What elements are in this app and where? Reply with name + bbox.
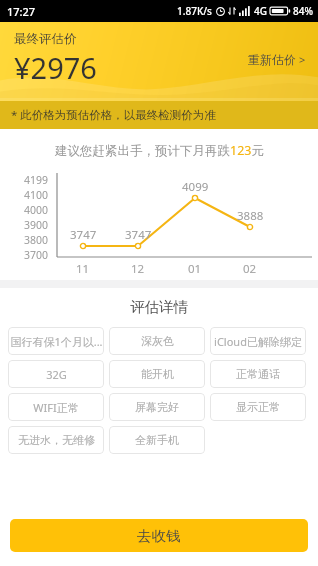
button[interactable]: 屏幕完好: [109, 393, 205, 421]
button[interactable]: 能开机: [109, 360, 205, 388]
staticText: 02: [243, 261, 257, 277]
button[interactable]: 去收钱: [10, 519, 308, 552]
staticText: 3900: [14, 218, 48, 232]
staticText: 4100: [14, 188, 48, 202]
staticText: 3747: [70, 227, 97, 243]
staticText: 01: [188, 261, 202, 277]
staticText: 3700: [14, 248, 48, 262]
staticText: >: [299, 52, 306, 67]
staticText: 国行有保1个月以...: [10, 334, 103, 349]
staticText: ¥2976: [14, 48, 97, 87]
button[interactable]: 全新手机: [109, 426, 205, 454]
staticText: iCloud已解除绑定: [214, 334, 302, 349]
staticText: 重新估价: [248, 52, 296, 67]
button[interactable]: 深灰色: [109, 327, 205, 355]
staticText: 建议您赶紧出手，预计下月再跌123元: [55, 142, 264, 159]
button[interactable]: WIFI正常: [8, 393, 104, 421]
button[interactable]: 重新估价: [240, 48, 314, 71]
button[interactable]: iCloud已解除绑定: [210, 327, 306, 355]
staticText: 4099: [182, 179, 209, 195]
staticText: 3747: [125, 227, 152, 243]
staticText: 显示正常: [236, 400, 280, 414]
staticText: 无进水，无维修: [18, 433, 95, 447]
staticText: 32G: [46, 367, 67, 382]
staticText: 12: [131, 261, 145, 277]
staticText: 3888: [237, 208, 264, 224]
button[interactable]: 国行有保1个月以...: [8, 327, 104, 355]
staticText: 11: [76, 261, 90, 277]
button[interactable]: 正常通话: [210, 360, 306, 388]
button[interactable]: 32G: [8, 360, 104, 388]
staticText: 4G: [254, 4, 267, 18]
staticText: 4000: [14, 203, 48, 217]
button[interactable]: 无进水，无维修: [8, 426, 104, 454]
staticText: 评估详情: [130, 298, 188, 316]
staticText: * 此价格为预估价格，以最终检测价为准: [11, 107, 216, 123]
staticText: 能开机: [141, 367, 174, 381]
staticText: 正常通话: [236, 367, 280, 381]
staticText: 去收钱: [137, 527, 181, 545]
staticText: 最终评估价: [14, 31, 77, 47]
staticText: WIFI正常: [33, 400, 79, 415]
staticText: 3800: [14, 233, 48, 247]
button[interactable]: 显示正常: [210, 393, 306, 421]
staticText: 全新手机: [135, 433, 179, 447]
staticText: 屏幕完好: [135, 400, 179, 414]
staticText: 17:27: [7, 4, 36, 19]
staticText: 4199: [14, 173, 48, 187]
staticText: 1.87K/s: [177, 4, 212, 18]
staticText: 深灰色: [141, 334, 174, 348]
staticText: 84%: [293, 4, 313, 18]
